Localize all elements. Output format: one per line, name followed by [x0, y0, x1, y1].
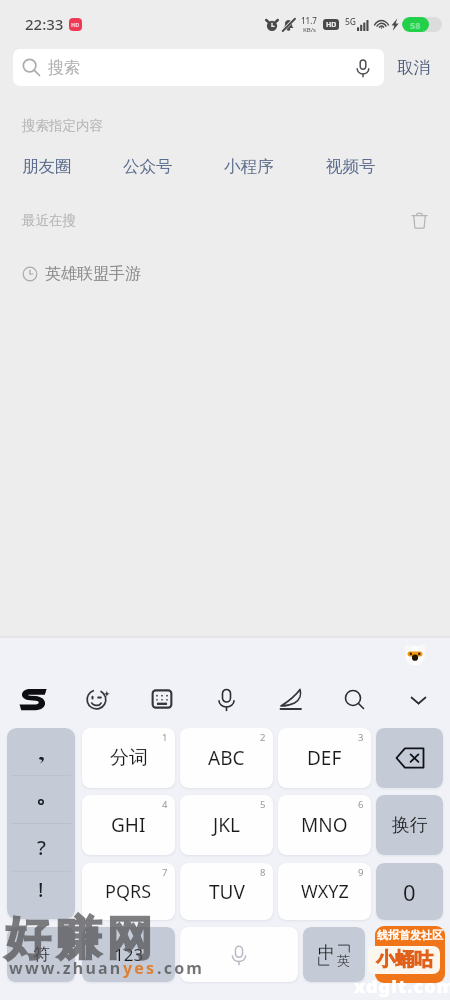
staticText: HD	[326, 20, 337, 30]
staticText: GHI	[111, 812, 146, 838]
staticText: HD	[71, 21, 80, 28]
button[interactable]: 公众号	[123, 156, 173, 177]
staticText: 58	[410, 19, 421, 31]
staticText: 8	[260, 866, 266, 879]
button[interactable]: Backspace	[376, 728, 443, 788]
staticText: .com	[157, 957, 205, 979]
other: Voice search	[353, 58, 373, 78]
staticText: ?	[37, 834, 46, 856]
button[interactable]: 6	[278, 795, 371, 855]
button[interactable]: Voice input	[194, 682, 258, 716]
staticText: 公众号	[123, 156, 173, 177]
button[interactable]: Keyboard layout	[130, 682, 194, 716]
staticText: TUV	[209, 879, 245, 905]
staticText: 取消	[397, 57, 430, 78]
button[interactable]: 2	[180, 728, 273, 788]
staticText: KB/s	[303, 26, 316, 34]
button[interactable]: ?	[7, 728, 75, 919]
staticText: 4	[162, 798, 168, 811]
staticText: xdglt.com	[354, 974, 450, 999]
staticText: 123	[114, 943, 144, 966]
staticText: www.zhuan	[9, 957, 123, 979]
staticText: 0	[403, 877, 416, 907]
button[interactable]: Mascot	[404, 644, 426, 666]
staticText: 视频号	[326, 156, 376, 177]
staticText: 换行	[392, 814, 428, 837]
staticText: 2	[260, 731, 266, 744]
staticText: JKL	[213, 812, 240, 838]
staticText: !	[38, 876, 44, 898]
button[interactable]: 9	[278, 863, 371, 920]
button[interactable]: 换行	[376, 795, 443, 855]
staticText: 英雄联盟手游	[45, 264, 141, 284]
staticText: 7	[162, 866, 168, 879]
staticText: 最近在搜	[22, 212, 76, 229]
button[interactable]: 英雄联盟手游	[0, 261, 450, 287]
staticText: 线报首发社区	[377, 928, 443, 942]
button[interactable]: Emoji	[65, 682, 130, 716]
button[interactable]: 8	[180, 863, 273, 920]
button[interactable]: 7	[82, 863, 175, 920]
button[interactable]: 5	[180, 795, 273, 855]
staticText: WXYZ	[301, 879, 349, 904]
button[interactable]: 符	[7, 927, 75, 982]
staticText: 搜索指定内容	[22, 117, 103, 134]
button[interactable]: 取消	[394, 51, 433, 84]
staticText: 1	[162, 731, 168, 744]
staticText: ABC	[208, 745, 245, 771]
staticText: 5	[260, 798, 266, 811]
staticText: 符	[33, 944, 50, 965]
staticText: 3	[358, 731, 364, 744]
button[interactable]: 小程序	[224, 156, 274, 177]
staticText: DEF	[307, 745, 342, 771]
button[interactable]: 朋友圈	[22, 156, 72, 177]
staticText: PQRS	[105, 879, 152, 904]
staticText: 搜索	[48, 58, 80, 78]
staticText: 小蛹咕	[376, 948, 433, 972]
staticText: 好赚网	[2, 910, 155, 968]
button[interactable]: 1	[82, 728, 175, 788]
staticText: 11.7	[301, 15, 317, 26]
button[interactable]: 123	[82, 927, 175, 982]
button[interactable]: Enter	[376, 927, 443, 982]
staticText: 中	[318, 942, 335, 963]
staticText: 6	[358, 798, 364, 811]
staticText: yes	[123, 957, 157, 979]
button[interactable]: Search	[322, 682, 386, 716]
staticText: 分词	[110, 746, 148, 770]
staticText: 9	[358, 866, 364, 879]
button[interactable]: Handwriting	[258, 682, 322, 716]
button[interactable]: 3	[278, 728, 371, 788]
button[interactable]: Space	[180, 927, 298, 982]
button[interactable]: 中	[303, 927, 365, 982]
button[interactable]: 4	[82, 795, 175, 855]
button[interactable]: Clear search history	[406, 207, 432, 233]
button[interactable]: 0	[376, 863, 443, 920]
staticText: 22:33	[25, 14, 64, 34]
staticText: 朋友圈	[22, 156, 72, 177]
button[interactable]: Sogou input	[0, 682, 65, 716]
button[interactable]: 搜索	[13, 49, 384, 86]
staticText: 5G	[345, 16, 357, 28]
staticText: 英	[337, 952, 350, 968]
button[interactable]: 视频号	[326, 156, 376, 177]
staticText: 小程序	[224, 156, 274, 177]
staticText: MNO	[301, 812, 348, 838]
button[interactable]: Hide keyboard	[386, 682, 450, 716]
